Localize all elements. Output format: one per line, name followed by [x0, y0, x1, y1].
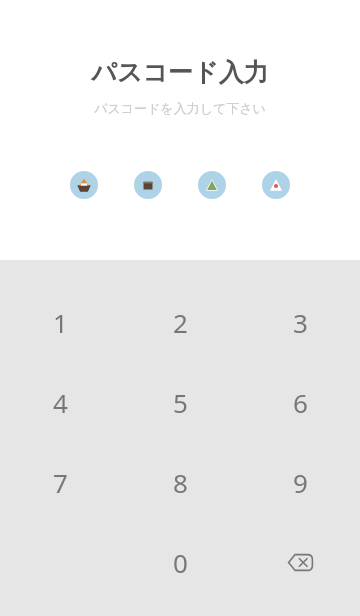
- button[interactable]: [134, 171, 162, 199]
- staticText: 3: [293, 305, 308, 340]
- staticText: パスコード入力: [91, 57, 269, 88]
- button[interactable]: 8: [120, 442, 240, 522]
- staticText: 1: [53, 305, 68, 340]
- staticText: 4: [53, 385, 68, 420]
- staticText: 5: [173, 385, 188, 420]
- button[interactable]: 3: [240, 282, 360, 362]
- button[interactable]: [198, 171, 226, 199]
- staticText: 9: [293, 465, 308, 500]
- button[interactable]: 2: [120, 282, 240, 362]
- button[interactable]: 1: [0, 282, 120, 362]
- button[interactable]: [262, 171, 290, 199]
- staticText: 6: [293, 385, 308, 420]
- staticText: パスコードを入力して下さい: [94, 100, 266, 116]
- button[interactable]: 5: [120, 362, 240, 442]
- button[interactable]: 7: [0, 442, 120, 522]
- button[interactable]: 4: [0, 362, 120, 442]
- staticText: 0: [173, 545, 188, 580]
- staticText: 2: [173, 305, 188, 340]
- button[interactable]: Backspace: [240, 522, 360, 602]
- button[interactable]: 6: [240, 362, 360, 442]
- button[interactable]: 9: [240, 442, 360, 522]
- button[interactable]: 0: [120, 522, 240, 602]
- button[interactable]: [70, 171, 98, 199]
- staticText: 7: [53, 465, 68, 500]
- staticText: 8: [173, 465, 188, 500]
